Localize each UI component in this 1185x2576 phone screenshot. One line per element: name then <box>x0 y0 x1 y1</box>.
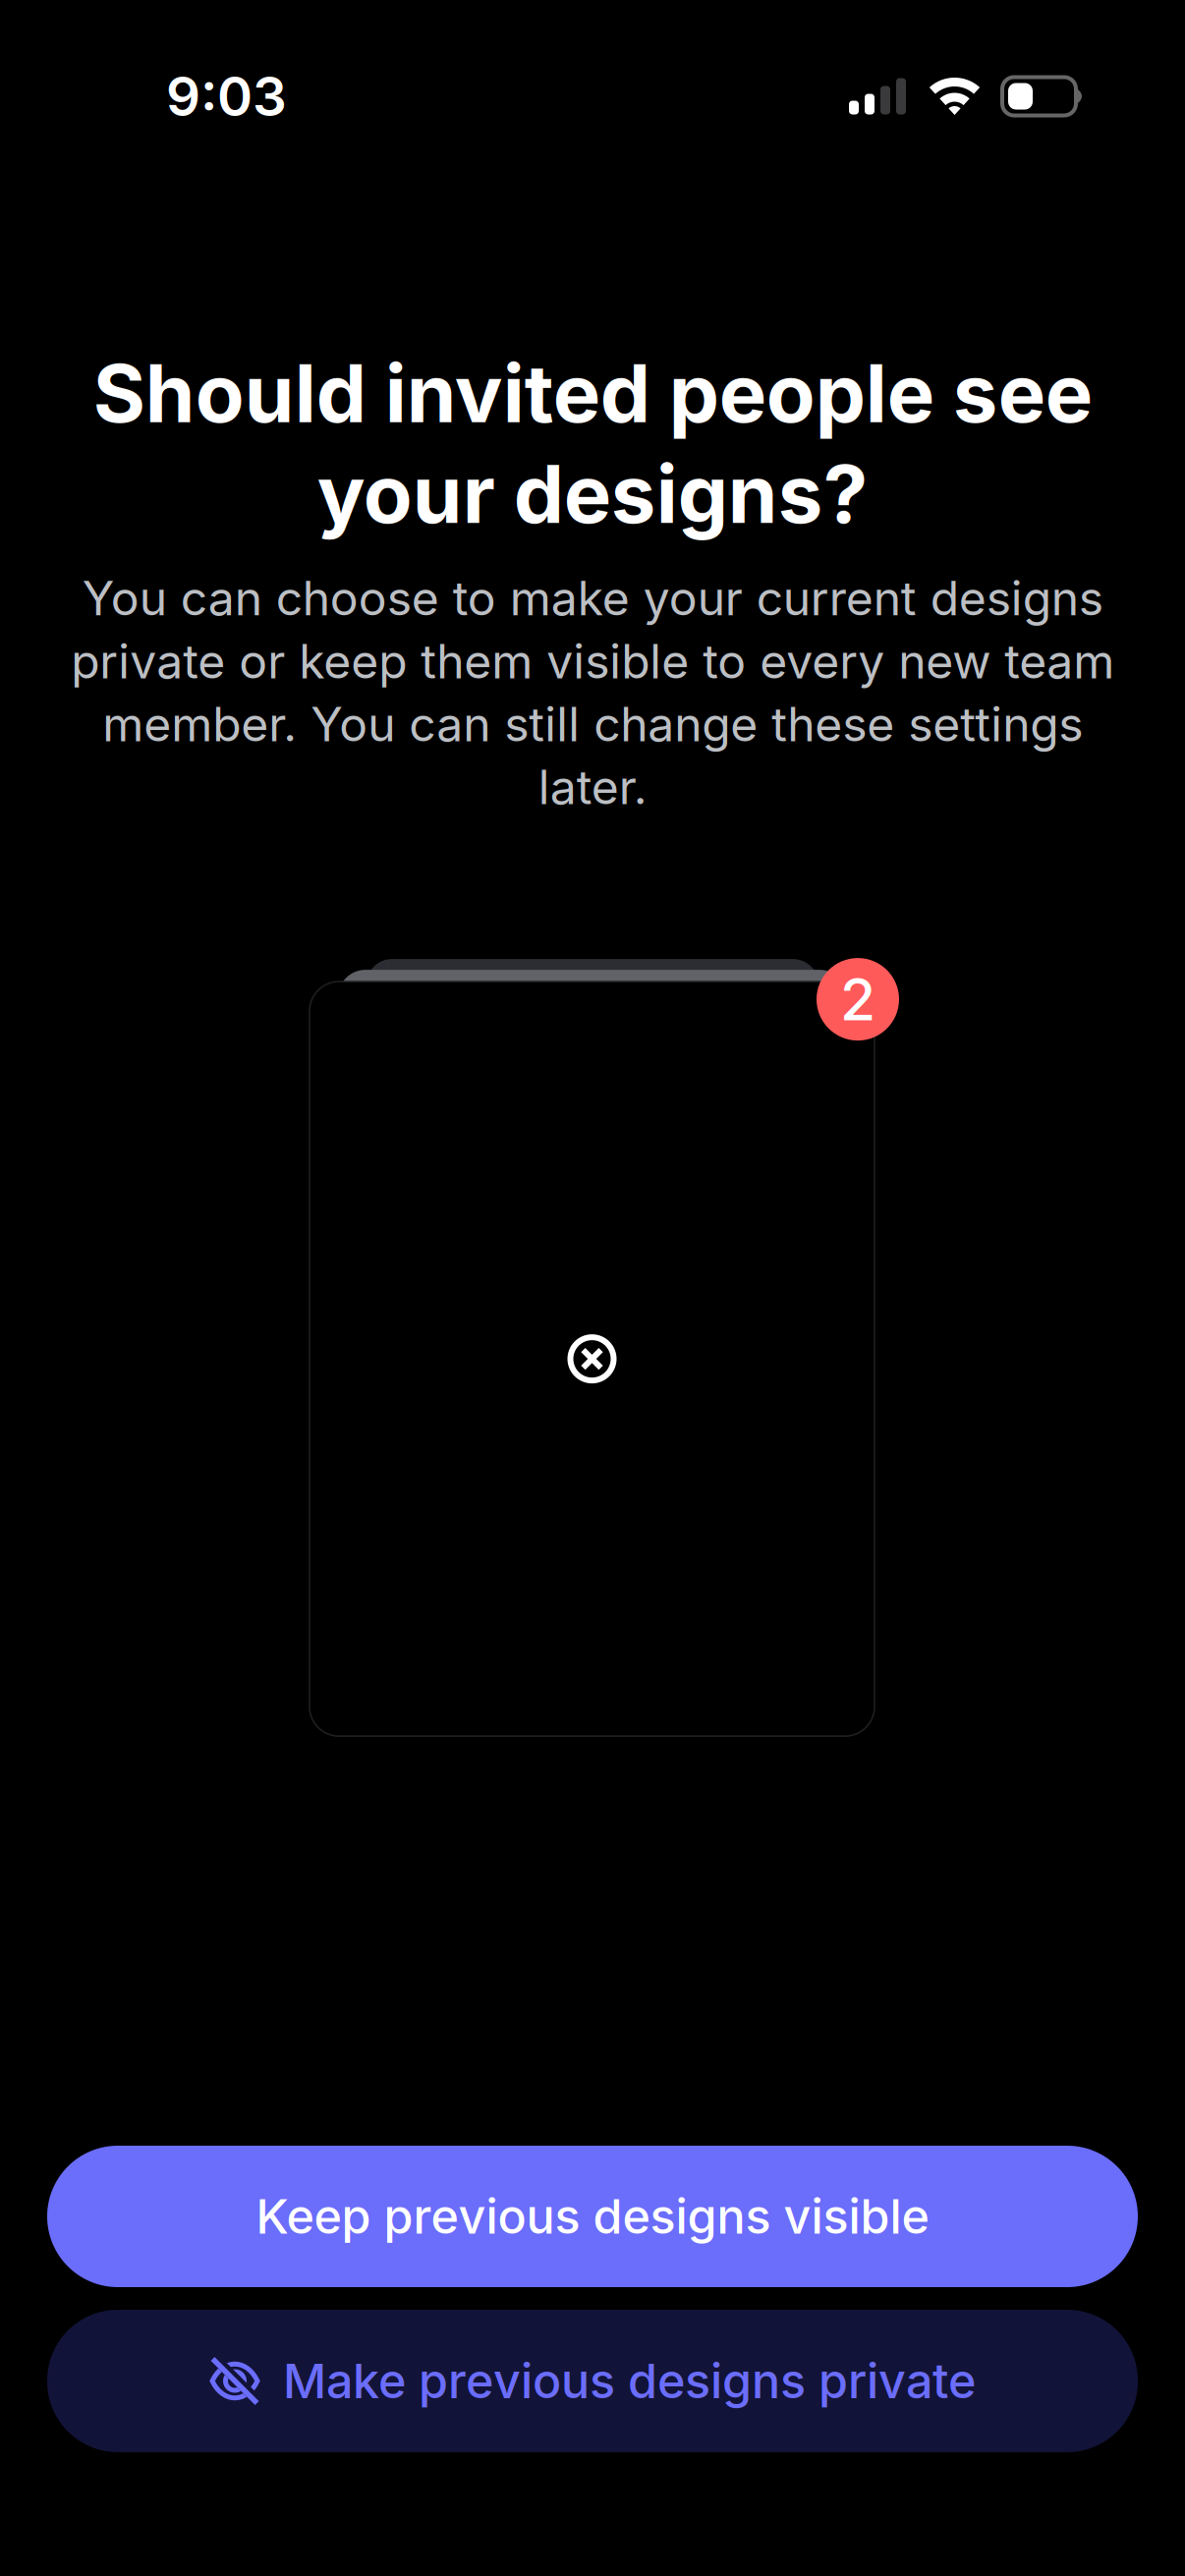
staticText: 9:03 <box>166 64 287 129</box>
staticText: Should invited people see your designs? <box>93 345 1092 542</box>
staticText: Keep previous designs visible <box>256 2188 929 2245</box>
button[interactable]: Keep previous designs visible <box>47 2146 1138 2287</box>
staticText: 2 <box>840 964 875 1034</box>
staticText: You can choose to make your current desi… <box>71 570 1114 816</box>
button[interactable]: Make previous designs private <box>47 2310 1138 2452</box>
staticText: Make previous designs private <box>283 2352 976 2410</box>
